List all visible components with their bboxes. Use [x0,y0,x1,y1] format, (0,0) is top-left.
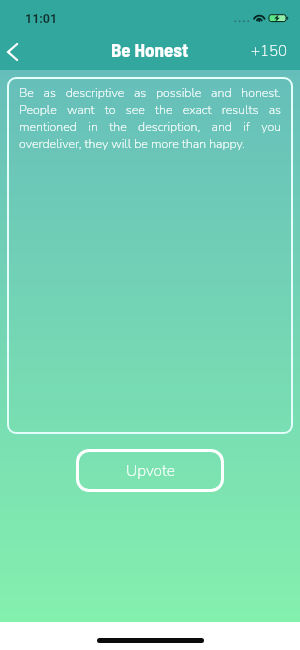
button[interactable]: Back [0,26,44,70]
staticText: Upvote [126,460,175,481]
button[interactable]: Upvote [76,449,224,492]
staticText: +150 [251,41,288,61]
staticText: Be Honest [111,38,189,61]
staticText: Be as descriptive as possible and honest… [19,84,281,152]
staticText: 11:01 [25,11,58,26]
